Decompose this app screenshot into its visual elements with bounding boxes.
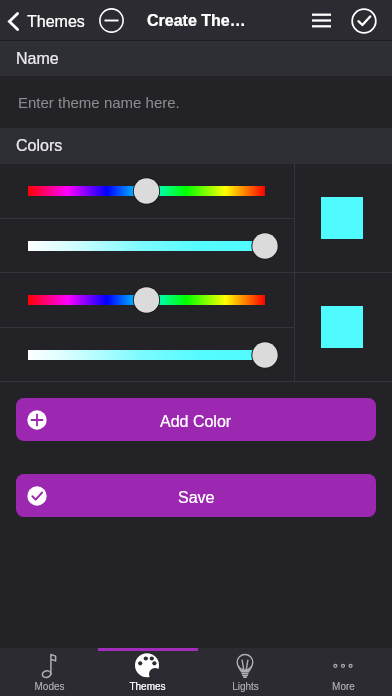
button[interactable]: Add Color [16, 398, 376, 441]
staticText: Name [16, 50, 59, 68]
button[interactable]: Menu [307, 8, 336, 33]
button[interactable]: More [294, 648, 392, 696]
button[interactable]: Modes [0, 648, 98, 696]
button[interactable]: Themes [98, 648, 196, 696]
button[interactable]: Lights [196, 648, 294, 696]
staticText: More [332, 681, 355, 692]
button[interactable]: Confirm [351, 8, 377, 34]
button[interactable] [0, 328, 294, 382]
staticText: Enter theme name here. [18, 94, 180, 111]
staticText: Lights [232, 681, 259, 692]
staticText: Themes [27, 13, 85, 31]
button[interactable]: Themes [0, 0, 93, 41]
staticText: Colors [16, 137, 63, 155]
button[interactable]: Remove theme [99, 8, 124, 33]
staticText: Create The… [147, 12, 246, 30]
button[interactable] [0, 164, 294, 218]
button[interactable] [0, 273, 294, 327]
button[interactable]: Enter theme name here. [0, 76, 392, 128]
button[interactable] [0, 219, 294, 273]
staticText: Modes [34, 681, 65, 692]
staticText: Save [178, 489, 215, 507]
button[interactable]: Save [16, 474, 376, 517]
staticText: Themes [129, 681, 166, 692]
staticText: Add Color [160, 413, 232, 431]
